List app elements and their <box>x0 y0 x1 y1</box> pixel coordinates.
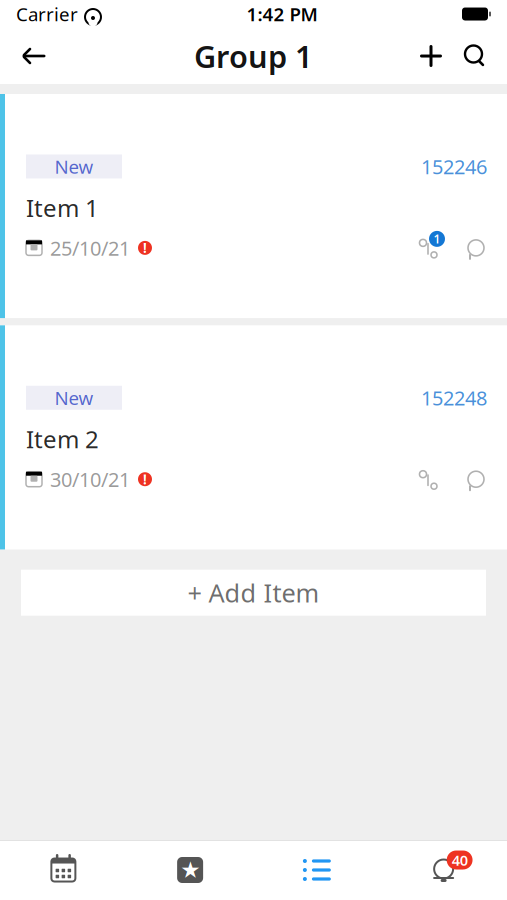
staticText: Item 2 <box>26 423 99 455</box>
button[interactable]: New <box>0 94 507 318</box>
button[interactable]: Back <box>10 32 58 80</box>
staticText: New <box>54 154 93 179</box>
button[interactable]: Favorites <box>127 840 254 900</box>
staticText: 30/10/21 <box>50 466 130 492</box>
staticText: ★ <box>180 857 200 883</box>
staticText: 152246 <box>421 153 487 180</box>
staticText: 1:42 PM <box>246 2 317 26</box>
staticText: 1 <box>433 231 440 247</box>
staticText: 25/10/21 <box>50 235 130 261</box>
staticText: ! <box>143 470 147 488</box>
staticText: Group 1 <box>194 36 313 76</box>
button[interactable]: Notifications, 40 new <box>380 840 507 900</box>
button[interactable]: + Add Item <box>21 570 486 616</box>
staticText: Carrier <box>16 2 78 26</box>
button[interactable]: New <box>0 325 507 550</box>
staticText: Item 1 <box>26 192 99 224</box>
staticText: 40 <box>452 850 468 870</box>
button[interactable]: Search <box>453 32 497 80</box>
staticText: ! <box>143 239 147 257</box>
staticText: New <box>54 385 93 410</box>
staticText: 152248 <box>421 384 487 411</box>
button[interactable]: List <box>253 840 380 900</box>
button[interactable]: Calendar <box>0 840 127 900</box>
staticText: + Add Item <box>187 576 319 609</box>
button[interactable]: Add <box>409 32 453 80</box>
